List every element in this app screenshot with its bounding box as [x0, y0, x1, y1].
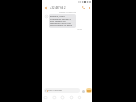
button[interactable]: Gallery	[52, 95, 57, 100]
button[interactable]: Location	[69, 95, 74, 100]
button[interactable]: Send	[86, 88, 92, 93]
button[interactable]: Sticker	[60, 95, 65, 100]
staticText: +32 487 66 2	[50, 6, 66, 10]
button[interactable]: Contact avatar	[45, 15, 48, 18]
staticText: Today 12:09 PM	[59, 11, 76, 14]
staticText: Start a message	[48, 89, 62, 92]
button[interactable]: Emoji	[81, 89, 85, 93]
button[interactable]: Bonjour, votre longtemps besoin d avis s…	[49, 14, 76, 28]
button[interactable]: Start a message	[44, 88, 80, 93]
staticText: 12:09	[77, 28, 82, 31]
button[interactable]: Menu	[77, 95, 82, 100]
staticText: Bonjour, votre longtemps besoin d avis s…	[50, 15, 75, 27]
button[interactable]: Call	[80, 4, 87, 11]
button[interactable]: More options	[87, 4, 91, 11]
button[interactable]: Back	[42, 4, 49, 11]
button[interactable]: Camera	[43, 95, 48, 100]
